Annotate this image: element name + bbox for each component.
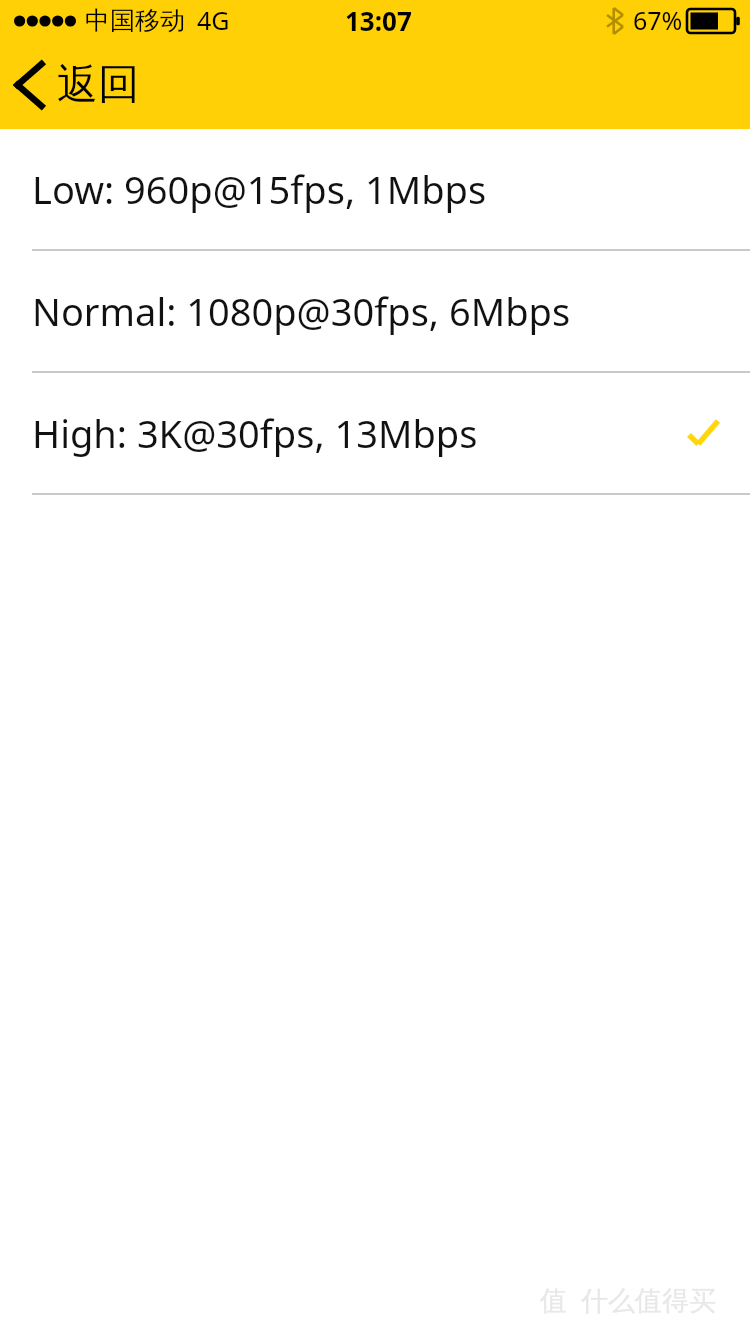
- staticText: 返回: [57, 59, 139, 111]
- staticText: 13:07: [345, 3, 412, 38]
- staticText: 67%: [633, 3, 683, 37]
- button[interactable]: 返回: [4, 52, 155, 118]
- staticText: High: 3K@30fps, 13Mbps: [32, 407, 478, 459]
- staticText: Low: 960p@15fps, 1Mbps: [32, 163, 487, 215]
- button[interactable]: Low: 960p@15fps, 1Mbps: [0, 129, 750, 249]
- staticText: 值 什么值得买: [539, 1281, 716, 1318]
- button[interactable]: Normal: 1080p@30fps, 6Mbps: [0, 251, 750, 371]
- staticText: 4G: [197, 3, 230, 37]
- other: Selected: [688, 420, 719, 446]
- staticText: Normal: 1080p@30fps, 6Mbps: [32, 285, 571, 337]
- button[interactable]: High: 3K@30fps, 13Mbps: [0, 373, 750, 493]
- staticText: 中国移动: [85, 5, 185, 36]
